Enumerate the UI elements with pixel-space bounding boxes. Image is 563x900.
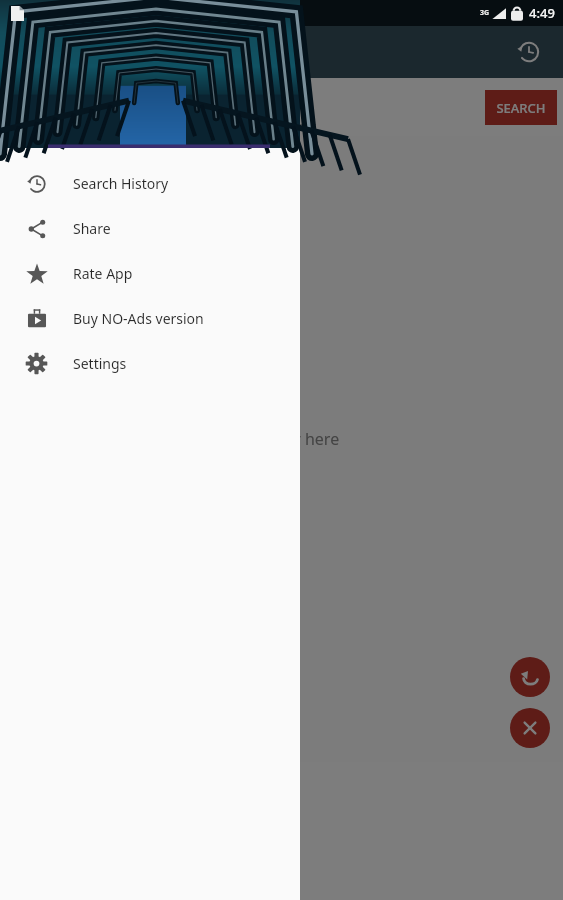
- button[interactable]: Rate App: [0, 251, 300, 296]
- staticText: Buy NO-Ads version: [73, 309, 204, 328]
- staticText: Share: [73, 219, 111, 238]
- staticText: Rate App: [73, 264, 133, 283]
- button[interactable]: Search History: [0, 161, 300, 206]
- button[interactable]: Undo: [510, 657, 550, 697]
- button[interactable]: Share: [0, 206, 300, 251]
- staticText: Recognition Dictionary: [62, 41, 247, 64]
- button[interactable]: Settings: [0, 341, 300, 386]
- staticText: 4:49: [529, 4, 555, 22]
- staticText: Search History: [73, 174, 169, 193]
- button[interactable]: Clear: [510, 708, 550, 748]
- staticText: SEARCH: [496, 99, 546, 117]
- staticText: 3G: [480, 8, 490, 18]
- button[interactable]: SEARCH: [485, 90, 557, 125]
- staticText: Settings: [73, 354, 127, 373]
- staticText: Meaning will appear here: [148, 428, 340, 450]
- button[interactable]: [16, 89, 316, 125]
- button[interactable]: Buy NO-Ads version: [0, 296, 300, 341]
- button[interactable]: Search history: [507, 30, 551, 74]
